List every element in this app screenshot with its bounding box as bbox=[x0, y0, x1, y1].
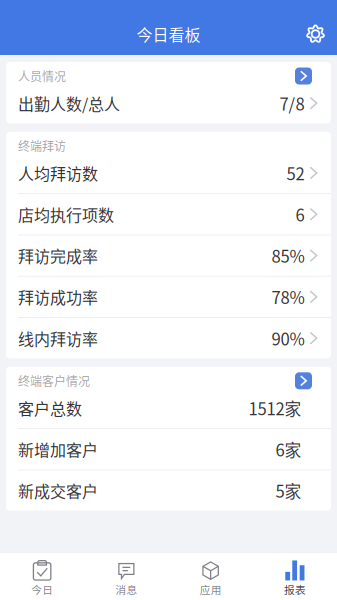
staticText: 52 bbox=[286, 161, 304, 185]
button[interactable]: 应用 bbox=[168, 553, 253, 600]
staticText: 出勤人数/总人 bbox=[18, 92, 120, 115]
button[interactable]: 今日 bbox=[0, 553, 84, 600]
button[interactable]: 设置 bbox=[306, 24, 337, 43]
staticText: 5家 bbox=[275, 478, 301, 503]
staticText: 78% bbox=[271, 285, 304, 309]
button[interactable]: 出勤人数/总人 bbox=[6, 83, 331, 123]
button[interactable]: 客户总数 bbox=[6, 388, 331, 428]
button[interactable]: 店均执行项数 bbox=[6, 194, 331, 234]
button[interactable]: 展开 bbox=[295, 372, 312, 389]
button[interactable]: 拜访成功率 bbox=[6, 277, 331, 317]
staticText: 拜访成功率 bbox=[18, 285, 98, 308]
staticText: 6 bbox=[295, 202, 304, 226]
staticText: 报表 bbox=[284, 582, 306, 597]
button[interactable]: 展开 bbox=[295, 67, 312, 84]
staticText: 应用 bbox=[200, 582, 222, 597]
staticText: 6家 bbox=[275, 437, 301, 461]
staticText: 1512家 bbox=[248, 396, 301, 420]
button[interactable]: 消息 bbox=[84, 553, 168, 600]
button[interactable]: 线内拜访率 bbox=[6, 318, 331, 358]
staticText: 90% bbox=[271, 326, 304, 350]
button[interactable]: 报表 bbox=[253, 553, 337, 600]
staticText: 人均拜访数 bbox=[18, 161, 98, 185]
staticText: 客户总数 bbox=[18, 396, 82, 420]
staticText: 店均执行项数 bbox=[18, 203, 114, 226]
staticText: 7/8 bbox=[279, 91, 304, 115]
button[interactable]: 人均拜访数 bbox=[6, 153, 331, 193]
staticText: 人员情况 bbox=[18, 67, 66, 85]
staticText: 新成交客户 bbox=[18, 479, 98, 502]
staticText: 今日看板 bbox=[136, 22, 200, 46]
button[interactable]: 新成交客户 bbox=[6, 470, 331, 511]
staticText: 终端拜访 bbox=[18, 137, 66, 154]
staticText: 终端客户情况 bbox=[18, 372, 90, 389]
button[interactable]: 拜访完成率 bbox=[6, 235, 331, 276]
staticText: 今日 bbox=[31, 582, 53, 597]
staticText: 线内拜访率 bbox=[18, 327, 98, 350]
staticText: 新增加客户 bbox=[18, 438, 98, 461]
staticText: 消息 bbox=[115, 582, 137, 597]
staticText: 拜访完成率 bbox=[18, 244, 98, 267]
button[interactable]: 新增加客户 bbox=[6, 429, 331, 469]
staticText: 85% bbox=[271, 243, 304, 268]
